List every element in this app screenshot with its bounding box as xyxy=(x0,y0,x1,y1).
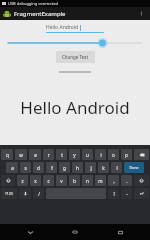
staticText: d xyxy=(37,165,40,171)
button[interactable]: Shift xyxy=(134,175,149,186)
staticText: r xyxy=(48,152,50,158)
button[interactable]: a xyxy=(6,162,18,173)
staticText: c xyxy=(47,178,50,184)
button[interactable]: Enter xyxy=(134,188,149,199)
staticText: Hello Android xyxy=(46,24,79,31)
button[interactable]: Microphone xyxy=(19,188,31,199)
staticText: ! xyxy=(113,191,115,197)
staticText: Done xyxy=(129,165,139,170)
button[interactable]: Done xyxy=(124,162,144,173)
button[interactable]: y xyxy=(69,149,80,160)
button[interactable]: d xyxy=(33,162,44,173)
staticText: Change Text xyxy=(62,54,89,60)
button[interactable]: k xyxy=(98,162,109,173)
staticText: k xyxy=(102,165,105,171)
staticText: z xyxy=(21,178,24,184)
button[interactable]: i xyxy=(95,149,106,160)
button[interactable]: m xyxy=(95,175,106,186)
staticText: n xyxy=(86,178,89,184)
button[interactable]: w xyxy=(15,149,27,160)
button[interactable]: ?123 xyxy=(1,188,17,199)
button[interactable]: More options xyxy=(136,8,147,19)
staticText: b xyxy=(73,178,76,184)
button[interactable]: t xyxy=(56,149,67,160)
button[interactable]: Backspace xyxy=(134,149,149,160)
button[interactable]: p xyxy=(121,149,132,160)
staticText: q xyxy=(6,152,9,158)
button[interactable]: , xyxy=(108,175,119,186)
button[interactable]: l xyxy=(111,162,122,173)
staticText: t xyxy=(61,152,63,158)
staticText: a xyxy=(11,165,14,171)
button[interactable]: u xyxy=(82,149,93,160)
button[interactable]: Home xyxy=(60,224,90,240)
button[interactable]: c xyxy=(43,175,54,186)
staticText: Hello Android xyxy=(0,96,150,119)
staticText: u xyxy=(86,152,89,158)
staticText: g xyxy=(63,165,66,171)
staticText: v xyxy=(60,178,63,184)
staticText: - xyxy=(126,191,128,197)
staticText: ?123 xyxy=(5,191,13,196)
button[interactable]: . xyxy=(121,175,132,186)
button[interactable]: n xyxy=(82,175,93,186)
button[interactable]: z xyxy=(17,175,28,186)
button[interactable]: v xyxy=(56,175,67,186)
staticText: o xyxy=(112,152,115,158)
staticText: / xyxy=(38,191,40,197)
button[interactable]: f xyxy=(46,162,57,173)
button[interactable]: Text size slider xyxy=(0,38,150,48)
button[interactable]: ! xyxy=(108,188,119,199)
button[interactable]: r xyxy=(43,149,54,160)
staticText: i xyxy=(100,152,102,158)
staticText: e xyxy=(34,152,37,158)
button[interactable]: j xyxy=(85,162,96,173)
button[interactable]: Back xyxy=(15,224,45,240)
staticText: . xyxy=(126,178,128,184)
button[interactable]: - xyxy=(121,188,132,199)
staticText: p xyxy=(125,152,128,158)
button[interactable]: Shift xyxy=(1,175,15,186)
button[interactable]: x xyxy=(30,175,41,186)
staticText: l xyxy=(116,165,118,171)
staticText: f xyxy=(51,165,53,171)
button[interactable]: s xyxy=(20,162,31,173)
button[interactable]: e xyxy=(29,149,41,160)
staticText: h xyxy=(76,165,79,171)
other: App icon xyxy=(3,10,11,18)
staticText: m xyxy=(98,178,103,184)
staticText: j xyxy=(90,165,92,171)
staticText: FragmentExample xyxy=(14,10,66,18)
button[interactable]: / xyxy=(33,188,44,199)
button[interactable]: g xyxy=(59,162,70,173)
staticText: , xyxy=(113,178,115,184)
button[interactable]: q xyxy=(1,149,13,160)
button[interactable]: Recent apps xyxy=(105,224,135,240)
staticText: s xyxy=(24,165,27,171)
button[interactable]: Hello Android xyxy=(46,24,104,33)
button[interactable]: b xyxy=(69,175,80,186)
staticText: w xyxy=(19,152,23,158)
button[interactable]: Change Text xyxy=(56,51,95,63)
staticText: y xyxy=(73,152,76,158)
button[interactable]: o xyxy=(108,149,119,160)
staticText: x xyxy=(34,178,37,184)
button[interactable]: h xyxy=(72,162,83,173)
staticText: USB debugging connected xyxy=(8,1,58,6)
